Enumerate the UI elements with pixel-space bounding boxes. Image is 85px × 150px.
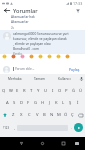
button[interactable]: ?123 (1, 121, 12, 134)
button[interactable]: K (53, 97, 60, 109)
button[interactable]: Paylaş (68, 67, 81, 72)
button[interactable]: P (63, 84, 70, 97)
staticText: I (52, 88, 54, 94)
staticText: . (71, 125, 72, 130)
button[interactable]: F (25, 97, 32, 109)
staticText: Bonalhost0 . com (13, 47, 39, 51)
button[interactable]: Ç (69, 109, 76, 121)
button[interactable]: React 3 (29, 54, 34, 59)
staticText: calmangut0000 Sonuncusunu ve yurt (13, 32, 69, 36)
button[interactable]: Backspace (76, 109, 85, 121)
button[interactable]: Yorum ekle... (13, 63, 68, 75)
button[interactable]: L (60, 97, 67, 109)
button[interactable]: Send (74, 123, 83, 132)
button[interactable]: X (17, 109, 25, 121)
staticText: Ğ (72, 88, 76, 94)
button[interactable]: React 4 (38, 54, 43, 59)
button[interactable]: C (25, 109, 33, 121)
button[interactable]: T (28, 84, 35, 97)
button[interactable]: B (41, 109, 48, 121)
staticText: Kullanıcı (58, 77, 71, 81)
button[interactable]: Voice input (77, 74, 85, 84)
staticText: Ç (71, 112, 74, 118)
button[interactable]: U (42, 84, 49, 97)
staticText: C (28, 112, 31, 118)
staticText: T (30, 88, 33, 94)
button[interactable]: Q (1, 84, 7, 97)
button[interactable]: Ü (77, 84, 84, 97)
staticText: kusursuz, elimde ve paylaşan olarak (13, 37, 67, 41)
button[interactable]: D (18, 97, 25, 109)
button[interactable]: React 5 (47, 54, 52, 59)
button[interactable]: W (7, 84, 14, 97)
staticText: O (58, 88, 62, 94)
staticText: L (62, 100, 65, 106)
button[interactable]: V (33, 109, 41, 121)
button[interactable]: React 6 (56, 54, 61, 59)
button[interactable]: Home (38, 139, 47, 148)
button[interactable]: Back (17, 139, 26, 148)
staticText: X (20, 112, 23, 118)
staticText: 2s (11, 26, 14, 30)
button[interactable]: React 2 (20, 54, 25, 59)
staticText: B (43, 112, 46, 118)
staticText: Paylaş (69, 67, 80, 72)
staticText: Yorumlar (13, 7, 38, 15)
button[interactable]: Ö (62, 109, 69, 121)
staticText: W (9, 88, 13, 94)
button[interactable]: , (12, 121, 17, 134)
staticText: Aksesuarlar hak (11, 15, 35, 19)
button[interactable]: Ğ (70, 84, 77, 97)
staticText: ?123 (3, 126, 10, 130)
staticText: Z (12, 112, 15, 118)
button[interactable]: H (39, 97, 46, 109)
button[interactable]: Recents (59, 139, 68, 148)
button[interactable]: Back (2, 6, 11, 15)
staticText: Ş (69, 100, 72, 106)
button[interactable]: I (49, 84, 56, 97)
button[interactable]: Ş (67, 97, 74, 109)
button[interactable]: İ (74, 97, 81, 109)
staticText: U (44, 88, 48, 94)
staticText: J (49, 100, 51, 106)
button[interactable]: React 7 (65, 54, 70, 59)
staticText: Yanıtla (13, 52, 22, 55)
button[interactable]: Hide keyboard (72, 139, 81, 148)
staticText: F (27, 100, 30, 106)
staticText: Yorum ekle... (15, 67, 35, 71)
button[interactable]: Y (35, 84, 42, 97)
staticText: D (20, 100, 24, 106)
staticText: G (34, 100, 38, 106)
button[interactable]: M (55, 109, 62, 121)
button[interactable]: React 0 (2, 54, 7, 59)
staticText: R (23, 88, 26, 94)
button[interactable]: Shift (0, 109, 9, 121)
staticText: M (57, 112, 61, 118)
staticText: Y (37, 88, 40, 94)
button[interactable]: O (56, 84, 63, 97)
button[interactable]: Tamam (27, 74, 52, 84)
button[interactable]: Kullanıcı (52, 74, 77, 84)
staticText: V (36, 112, 39, 118)
button[interactable]: React 1 (11, 54, 16, 59)
staticText: Ö (64, 112, 68, 118)
button[interactable]: G (32, 97, 39, 109)
button[interactable]: A (4, 97, 11, 109)
staticText: Ü (79, 88, 83, 94)
staticText: İ (77, 100, 79, 106)
button[interactable]: calmangut0000 Sonuncusunu ve yurt (0, 30, 85, 55)
staticText: , elimde ve paylaşan olası (13, 42, 51, 46)
button[interactable]: S (11, 97, 18, 109)
button[interactable]: Merhaba (3, 74, 27, 84)
button[interactable]: R (21, 84, 28, 97)
staticText: S (13, 100, 16, 106)
button[interactable]: Sort (73, 6, 82, 15)
staticText: 17:33 (73, 1, 83, 6)
button[interactable]: E (14, 84, 21, 97)
staticText: Merhaba (8, 77, 22, 81)
button[interactable]: Z (9, 109, 17, 121)
button[interactable]: J (46, 97, 53, 109)
button[interactable]: N (48, 109, 55, 121)
